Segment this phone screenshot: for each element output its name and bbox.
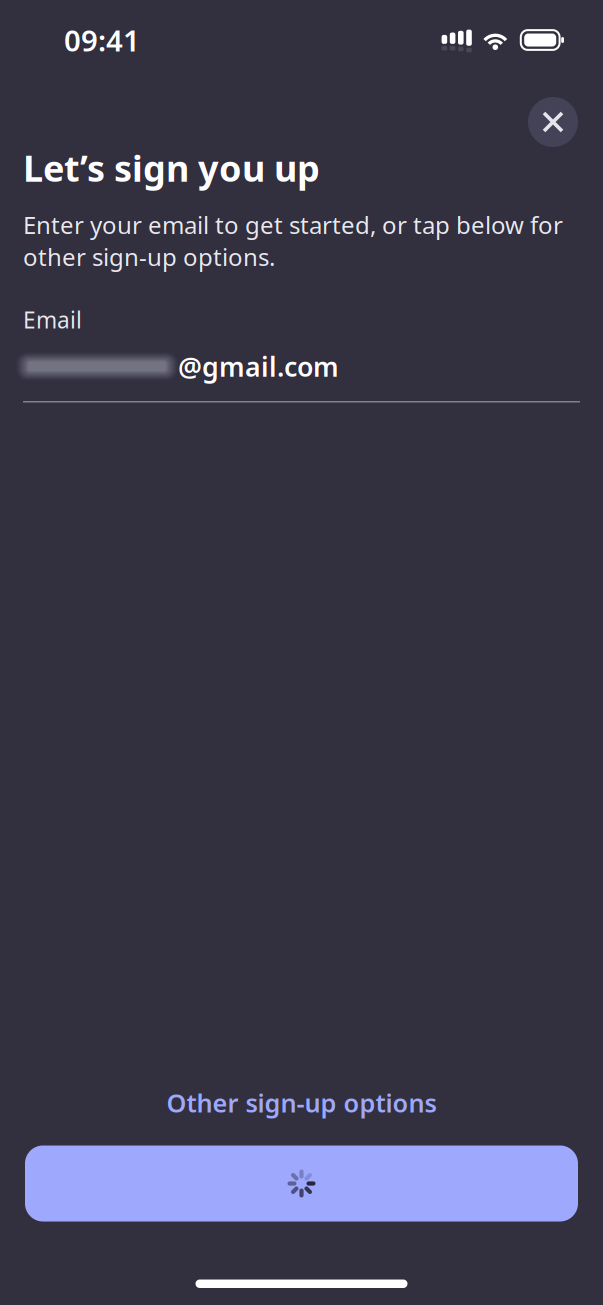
staticText: 09:41 (64, 20, 140, 59)
button[interactable]: Other sign-up options (0, 1077, 603, 1128)
staticText: Let’s sign you up (23, 144, 320, 192)
button[interactable]: Email address field (0, 349, 603, 402)
staticText: @gmail.com (178, 349, 339, 384)
button[interactable]: Close (528, 97, 578, 147)
staticText: Enter your email to get started, or tap … (23, 209, 563, 272)
button[interactable]: Continue (25, 1145, 578, 1221)
staticText: Other sign-up options (166, 1086, 436, 1119)
staticText: Email (23, 305, 82, 335)
